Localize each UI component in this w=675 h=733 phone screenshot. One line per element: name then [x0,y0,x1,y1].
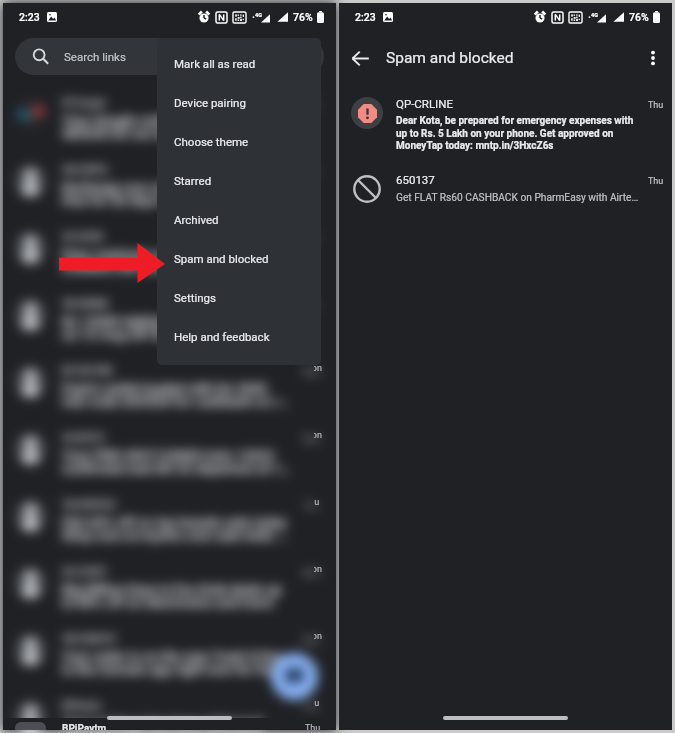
staticText: Thu [648,176,664,187]
button[interactable]: TM-MYNTRA [3,486,336,553]
staticText: 4G [591,12,598,18]
staticText: Your Google verification code is 483920 … [62,112,292,141]
staticText: Get FLAT Rs60 CASHBACK on PharmEasy with… [396,192,639,204]
staticText: 2:23 [355,11,376,23]
staticText: Thu [303,702,319,713]
staticText: 650137 [396,173,435,186]
staticText: Rs 12000 debited from A/c XX1234 on 12-A… [62,313,292,342]
button[interactable]: AD-FLIPKT [3,553,336,620]
staticText: Help and feedback [174,330,270,343]
staticText: Mon [314,363,322,374]
button[interactable]: AX-IRCTCi [3,419,336,486]
staticText: Your package has been delivered Rate you… [62,715,292,733]
staticText: Mon [303,635,321,646]
staticText: Recharge now and get 2GB extra data free… [62,179,292,208]
staticText: Mon [314,564,322,575]
staticText: AX-IRCTCi [62,433,105,444]
staticText: Mon [303,568,321,579]
staticText: Choose theme [174,135,249,148]
staticText: AD-FLIPKT [62,567,107,578]
staticText: VM-ZOMATO [62,634,116,645]
staticText: Thu [305,723,321,730]
staticText: 4G [255,12,262,18]
button[interactable]: Starred [157,161,321,200]
staticText: Thu [303,501,319,512]
button[interactable]: More options [635,40,671,76]
staticText: Thu [314,698,320,709]
staticText: Mark all as read [174,57,256,70]
button[interactable]: Spam and blocked [157,239,321,278]
button[interactable]: Help and feedback [157,317,321,356]
staticText: Search links [64,50,126,63]
button[interactable]: BPiPaytm [3,687,336,730]
staticText: Mon [303,434,321,445]
staticText: Paytm wallet loaded with Rs 2500 Use cod… [62,380,292,409]
button[interactable]: Settings [157,278,321,317]
button[interactable]: AD-ICICIB [3,218,336,285]
staticText: Starred [174,174,212,187]
staticText: Flat 60% off on top brands only today Sh… [62,514,292,543]
button[interactable]: Back [342,40,378,76]
staticText: 76% [293,11,313,23]
staticText: Your order is on the way Track it live i… [62,648,292,677]
staticText: Thu [314,497,320,508]
button[interactable]: 650137 [339,176,672,208]
staticText: Dear customer your account has been cred… [62,246,292,275]
staticText: Dear Kota, be prepared for emergency exp… [396,115,643,151]
staticText: TM-MYNTRA [62,500,116,511]
staticText: Mon [303,367,321,378]
staticText: VM-AIRTEL [62,165,109,176]
button[interactable]: Search links [15,38,324,75]
button[interactable]: Archived [157,200,321,239]
button[interactable]: BP-PAYTMB [3,352,336,419]
button[interactable]: Start chat [271,653,318,700]
button[interactable]: Choose theme [157,122,321,161]
staticText: BPiPaytm [62,723,107,730]
staticText: BPiPaytm [62,701,102,712]
staticText: 76% [629,11,649,23]
staticText: VM-SBIINB [62,299,108,310]
staticText: Spam and blocked [174,252,269,265]
button[interactable]: VM-SBIINB [3,285,336,352]
staticText: BP-PAYTMB [62,366,113,377]
staticText: Device pairing [174,96,246,109]
staticText: SP-Google [62,98,106,109]
staticText: 2:23 [19,11,40,23]
button[interactable]: QP-CRLINE [339,100,672,154]
staticText: Spam and blocked [386,49,514,67]
staticText: AD-ICICIB [62,232,103,243]
staticText: Mon [314,631,322,642]
staticText: QP-CRLINE [396,97,453,110]
button[interactable]: SP-Google [3,84,336,151]
button[interactable]: VM-AIRTEL [3,151,336,218]
staticText: Settings [174,291,216,304]
staticText: Archived [174,213,219,226]
staticText: Big Billion Days is live Grab deals up t… [62,581,292,610]
staticText: Mon [314,430,322,441]
button[interactable]: VM-ZOMATO [3,620,336,687]
staticText: Thu [648,100,664,111]
staticText: Your PNR 4567123890 train 12622 confirme… [62,447,292,476]
button[interactable]: Mark all as read [157,44,321,83]
button[interactable]: Device pairing [157,83,321,122]
